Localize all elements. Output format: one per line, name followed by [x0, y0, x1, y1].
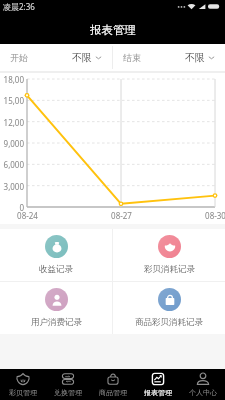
staticText: 12,000: [0, 117, 24, 127]
staticText: 3,000: [3, 181, 24, 191]
button[interactable]: 个人中心: [180, 369, 225, 400]
staticText: 个人中心: [189, 388, 217, 397]
staticText: 0: [19, 202, 24, 212]
staticText: 用户消费记录: [31, 317, 82, 328]
staticText: 08-30: [205, 210, 225, 220]
button[interactable]: 开始: [0, 44, 112, 71]
staticText: 报表管理: [144, 388, 172, 397]
button[interactable]: 结束: [113, 44, 225, 71]
staticText: 商品管理: [99, 388, 127, 397]
button[interactable]: 商品彩贝消耗记录: [113, 282, 225, 334]
button[interactable]: 报表管理: [135, 369, 180, 400]
staticText: 不限: [185, 51, 205, 64]
staticText: 9,000: [3, 138, 24, 148]
staticText: 凌晨2:36: [3, 1, 35, 12]
button[interactable]: 商品管理: [90, 369, 135, 400]
staticText: 商品彩贝消耗记录: [135, 317, 203, 328]
staticText: 08-27: [111, 210, 132, 220]
staticText: 6,000: [3, 159, 24, 169]
button[interactable]: 收益记录: [0, 229, 112, 281]
staticText: 结束: [123, 52, 141, 63]
staticText: 不限: [72, 51, 92, 64]
button[interactable]: 彩贝消耗记录: [113, 229, 225, 281]
staticText: 报表管理: [90, 23, 136, 37]
staticText: 收益记录: [39, 264, 73, 275]
button[interactable]: 彩贝管理: [0, 369, 45, 400]
staticText: 开始: [10, 52, 28, 63]
staticText: 15,000: [0, 95, 24, 105]
staticText: 08-24: [17, 210, 38, 220]
button[interactable]: 用户消费记录: [0, 282, 112, 334]
staticText: 18,000: [0, 74, 24, 84]
button[interactable]: 兑换管理: [45, 369, 90, 400]
staticText: 彩贝消耗记录: [144, 264, 195, 275]
staticText: 彩贝管理: [9, 388, 37, 397]
staticText: 兑换管理: [54, 388, 82, 397]
